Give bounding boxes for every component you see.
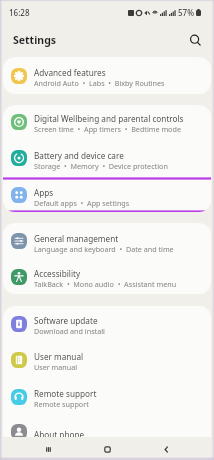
button[interactable]: Search — [184, 29, 206, 51]
button[interactable]: Digital Wellbeing and parental controls — [3, 105, 211, 138]
staticText: Digital Wellbeing and parental controls — [34, 113, 184, 124]
staticText: Storage • Memory • Device protection — [34, 161, 168, 171]
button[interactable]: Home — [96, 438, 118, 460]
button[interactable]: General management — [3, 223, 211, 259]
staticText: Apps — [34, 187, 54, 198]
staticText: User manual — [34, 362, 78, 372]
staticText: Screen time • App timers • Bedtime mode — [34, 124, 181, 134]
staticText: Settings — [13, 33, 57, 47]
staticText: Remote support — [34, 388, 97, 399]
button[interactable]: Remote support — [3, 378, 211, 415]
button[interactable]: Battery and device care — [3, 138, 211, 178]
button[interactable]: Back — [155, 438, 177, 460]
staticText: Battery and device care — [34, 150, 124, 161]
staticText: User manual — [34, 351, 84, 362]
staticText: Default apps • App settings — [34, 198, 130, 208]
staticText: General management — [34, 233, 119, 244]
button[interactable]: About phone — [3, 415, 211, 449]
staticText: Advanced features — [34, 67, 106, 78]
staticText: TalkBack • Mono audio • Assistant menu — [34, 279, 177, 289]
button[interactable]: Advanced features — [3, 57, 211, 94]
staticText: 57% — [178, 7, 194, 18]
staticText: Android Auto • Labs • Bixby Routines — [34, 78, 165, 88]
staticText: 16:28 — [9, 7, 30, 18]
button[interactable]: User manual — [3, 341, 211, 378]
button[interactable]: Recents — [37, 438, 59, 460]
staticText: Download and install — [34, 326, 105, 336]
staticText: About phone — [34, 429, 85, 440]
staticText: Accessibility — [34, 268, 81, 279]
staticText: Software update — [34, 315, 98, 326]
staticText: Remote support — [34, 399, 89, 409]
staticText: Language and keyboard • Date and time — [34, 244, 174, 254]
button[interactable]: Accessibility — [3, 259, 211, 294]
button[interactable]: Apps — [3, 178, 211, 212]
button[interactable]: Software update — [3, 306, 211, 341]
